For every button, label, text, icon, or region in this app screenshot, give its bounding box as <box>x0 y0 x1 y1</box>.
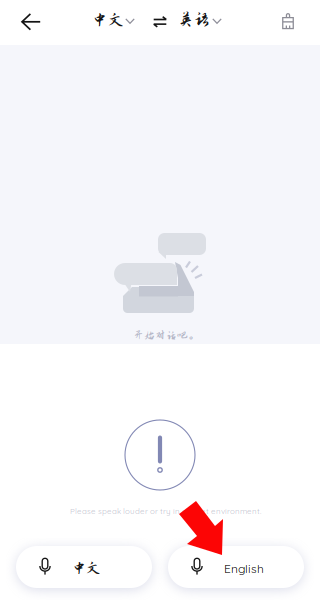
staticText: 中文 <box>92 11 124 28</box>
staticText: 英语 <box>178 11 210 28</box>
button[interactable]: 中文 <box>16 546 152 588</box>
button[interactable]: Clear conversation <box>266 0 310 43</box>
staticText: 中文 <box>72 560 100 576</box>
button[interactable]: Back <box>8 0 54 44</box>
button[interactable]: English <box>168 546 304 588</box>
staticText: Please speak louder or try in a quiet en… <box>70 506 261 516</box>
staticText: 开始对话吧。 <box>133 329 200 341</box>
staticText: English <box>224 561 264 576</box>
button[interactable]: 中文 <box>92 1 146 41</box>
button[interactable]: 英语 <box>178 1 232 41</box>
